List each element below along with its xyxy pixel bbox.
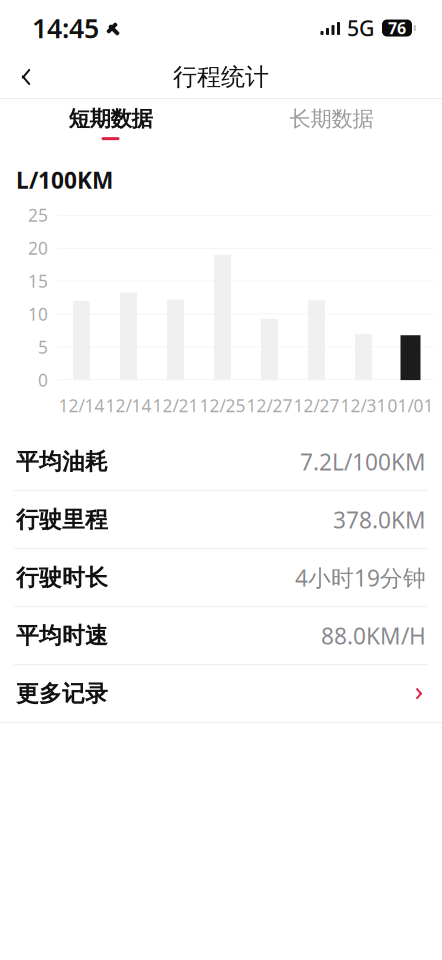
button[interactable]: 长期数据 (221, 99, 442, 147)
button[interactable]: 平均油耗 (0, 433, 442, 490)
staticText: 12/31 (340, 394, 386, 417)
staticText: 378.0KM (333, 505, 426, 535)
staticText: 76 (388, 17, 406, 39)
button[interactable]: 行驶里程 (0, 491, 442, 548)
staticText: 14:45 (32, 10, 99, 46)
staticText: 5 (38, 336, 48, 359)
staticText: 12/25 (199, 394, 245, 417)
staticText: 01/01 (387, 394, 433, 417)
staticText: 20 (28, 237, 48, 260)
staticText: 短期数据 (68, 106, 152, 132)
staticText: L/100KM (16, 165, 113, 195)
button[interactable]: 短期数据 (0, 99, 221, 147)
staticText: 88.0KM/H (321, 621, 426, 651)
staticText: 12/21 (152, 394, 198, 417)
staticText: 12/27 (246, 394, 292, 417)
staticText: 更多记录 (16, 680, 108, 707)
staticText: 平均时速 (16, 622, 108, 649)
staticText: 25 (28, 204, 48, 227)
button[interactable]: 更多记录 (0, 665, 442, 722)
staticText: 12/27 (293, 394, 339, 417)
staticText: 10 (28, 303, 48, 326)
staticText: 平均油耗 (16, 448, 108, 475)
staticText: 0 (38, 369, 48, 392)
staticText: 7.2L/100KM (300, 447, 426, 477)
button[interactable]: 返回 (0, 56, 52, 98)
staticText: 行驶里程 (16, 506, 108, 533)
button[interactable]: 平均时速 (0, 607, 442, 664)
staticText: 12/14 (58, 394, 104, 417)
staticText: 行程统计 (173, 62, 269, 92)
button[interactable]: 行驶时长 (0, 549, 442, 606)
staticText: 5G (347, 14, 375, 42)
staticText: 长期数据 (289, 106, 373, 132)
staticText: 15 (28, 270, 48, 293)
staticText: 4小时19分钟 (295, 563, 426, 593)
staticText: 12/14 (105, 394, 151, 417)
staticText: 行驶时长 (16, 564, 108, 591)
